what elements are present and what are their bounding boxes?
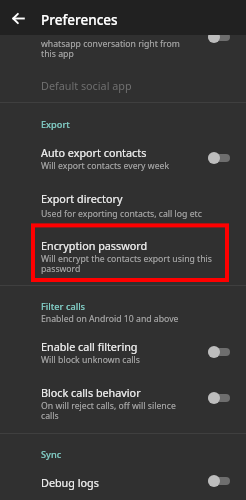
staticText: Will block unknown calls	[41, 354, 140, 366]
staticText: Enable call filtering	[41, 339, 138, 354]
button[interactable]: Auto export contacts	[0, 134, 246, 178]
button[interactable]: Navigate up	[0, 0, 35, 35]
staticText: whatsapp conversation right from this ap…	[41, 38, 180, 59]
button[interactable]: Debug logs	[0, 464, 246, 500]
staticText: Preferences	[41, 11, 118, 29]
staticText: Will export contacts every week	[41, 160, 170, 172]
staticText: Default social app	[41, 78, 132, 93]
staticText: Filter calls	[41, 300, 86, 313]
staticText: Block calls behavior	[41, 385, 141, 400]
staticText: Enabled on Android 10 and above	[41, 313, 179, 325]
staticText: Debug logs	[41, 475, 99, 490]
button[interactable]: Block calls behavior	[0, 374, 246, 426]
button[interactable]: Enable call filtering	[0, 328, 246, 372]
staticText: Export	[41, 118, 70, 131]
staticText: Export directory	[41, 191, 123, 206]
staticText: Used for exporting contacts, call log et…	[41, 208, 202, 220]
staticText: Will encrypt the contacts export using t…	[41, 253, 213, 274]
button[interactable]: Export directory	[0, 180, 246, 224]
button[interactable]: Encryption password	[0, 227, 246, 282]
staticText: Encryption password	[41, 238, 148, 253]
staticText: On will reject calls, off will silence c…	[41, 400, 176, 421]
button[interactable]: whatsapp conversation right from this ap…	[0, 26, 246, 62]
button[interactable]: Default social app	[0, 68, 246, 98]
staticText: Auto export contacts	[41, 145, 147, 160]
staticText: Sync	[41, 448, 62, 461]
